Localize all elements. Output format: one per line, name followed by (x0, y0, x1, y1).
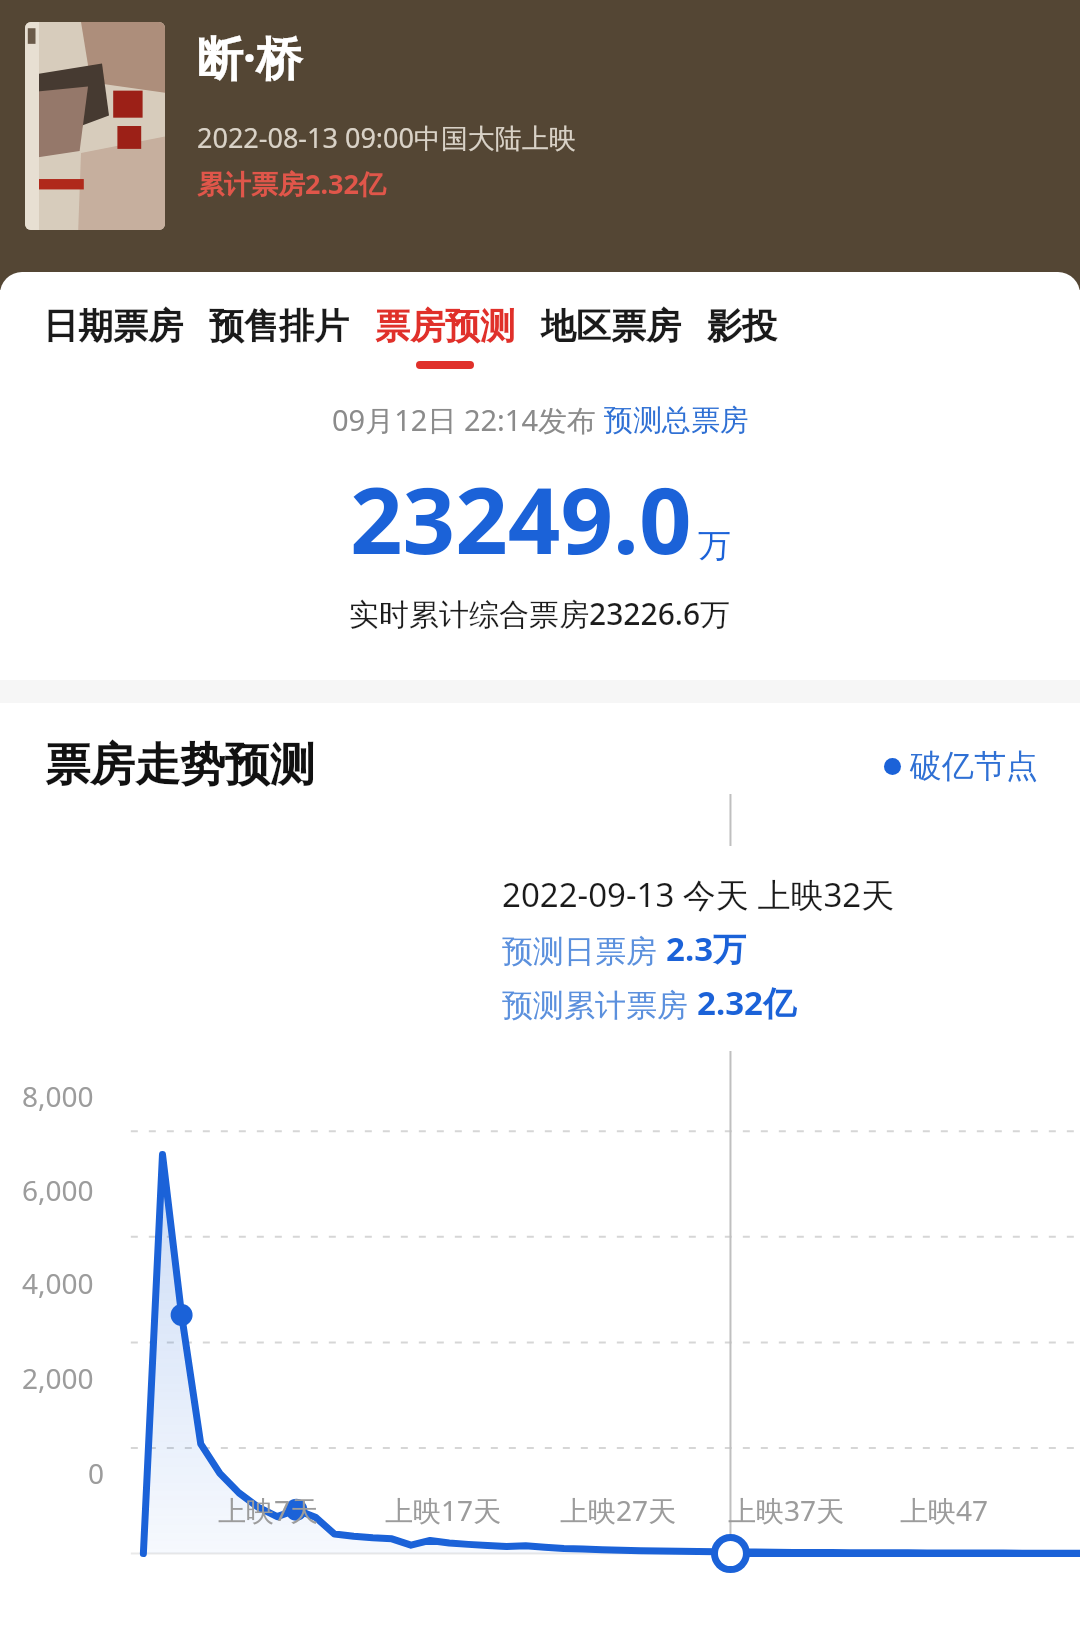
button[interactable]: 地区票房 (528, 272, 694, 369)
staticText: 2,000 (22, 1359, 94, 1397)
staticText: 2022-08-13 09:00中国大陆上映 (197, 119, 576, 156)
button[interactable]: 破亿节点 (884, 746, 1038, 786)
staticText: 票房走势预测 (45, 737, 315, 794)
staticText: 0 (88, 1454, 105, 1492)
staticText: 地区票房 (541, 304, 681, 348)
staticText: 断·桥 (197, 26, 302, 89)
staticText: 预测日票房 (502, 929, 666, 971)
staticText: 上映27天 (560, 1491, 677, 1529)
staticText: 2022-09-13 今天 上映32天 (502, 872, 895, 917)
button[interactable]: 预测总票房 (604, 402, 749, 439)
staticText: 4,000 (22, 1264, 94, 1302)
staticText: 09月12日 22:14发布 (332, 400, 604, 440)
staticText: 6,000 (22, 1171, 94, 1209)
button[interactable]: 预售排片 (196, 272, 362, 369)
staticText: 预测累计票房 (502, 983, 697, 1025)
button[interactable]: 影投 (694, 272, 790, 369)
button[interactable]: 断·桥 电影海报 (25, 22, 165, 230)
button[interactable]: 日期票房 (30, 272, 196, 369)
staticText: 日期票房 (43, 304, 183, 348)
staticText: 破亿节点 (910, 746, 1038, 786)
staticText: 8,000 (22, 1077, 94, 1115)
staticText: 万 (698, 525, 731, 567)
staticText: 2.3万 (666, 926, 747, 971)
staticText: 上映37天 (728, 1491, 845, 1529)
staticText: 上映47 (900, 1491, 989, 1529)
staticText: 实时累计综合票房23226.6万 (349, 593, 731, 634)
button[interactable]: 2022-09-13 今天 上映32天 (470, 846, 985, 1051)
staticText: 上映7天 (218, 1491, 319, 1529)
button[interactable]: 票房预测 (362, 272, 528, 369)
staticText: 预测总票房 (604, 402, 749, 439)
staticText: 票房预测 (375, 304, 515, 348)
staticText: 预售排片 (209, 304, 349, 348)
staticText: 23249.0 (350, 456, 692, 581)
staticText: 2.32亿 (697, 980, 796, 1025)
staticText: 上映17天 (385, 1491, 502, 1529)
staticText: 累计票房2.32亿 (197, 165, 386, 202)
staticText: 影投 (707, 304, 777, 348)
